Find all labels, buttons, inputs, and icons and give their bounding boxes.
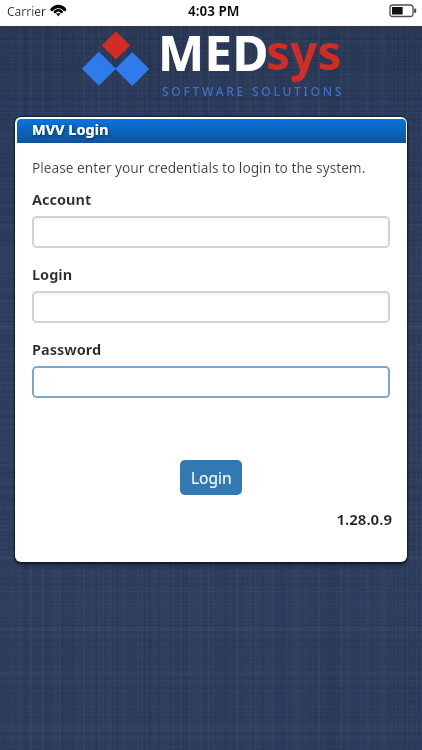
button[interactable]: MVV Login: [17, 119, 406, 143]
button[interactable]: [32, 291, 390, 323]
staticText: sys: [266, 19, 342, 84]
other: Wi-Fi signal: [50, 2, 68, 18]
staticText: Account: [32, 189, 92, 209]
button[interactable]: [32, 366, 390, 398]
staticText: 4:03 PM: [188, 2, 240, 20]
staticText: Carrier: [7, 3, 47, 19]
staticText: MED: [158, 19, 269, 86]
button[interactable]: [32, 216, 390, 248]
button[interactable]: Login: [180, 460, 242, 495]
staticText: 1.28.0.9: [15, 509, 392, 529]
staticText: MVV Login: [32, 119, 109, 139]
staticText: Login: [191, 467, 232, 488]
staticText: Please enter your credentials to login t…: [32, 158, 366, 177]
staticText: SOFTWARE SOLUTIONS: [162, 83, 345, 99]
staticText: Password: [32, 339, 102, 359]
staticText: Login: [32, 264, 73, 284]
other: Battery: [390, 5, 417, 17]
